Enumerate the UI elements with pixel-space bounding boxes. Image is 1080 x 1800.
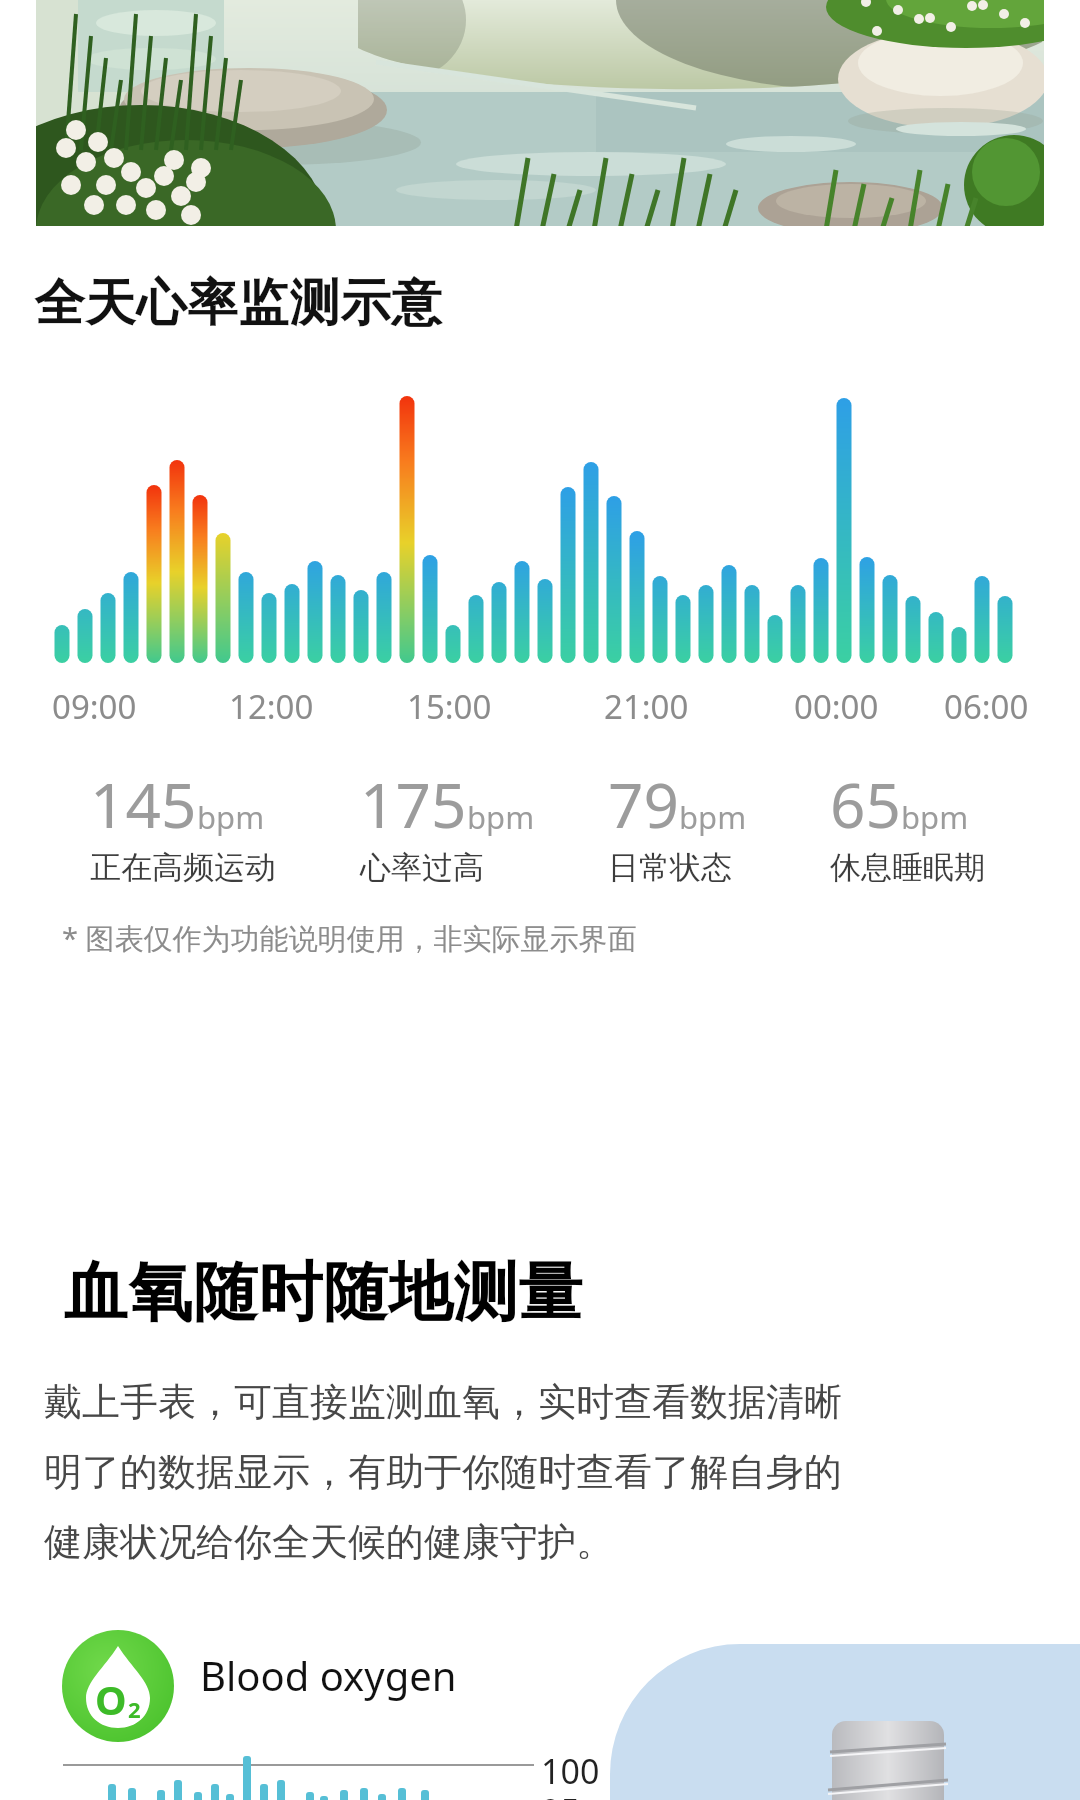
staticText: 12:00 [229, 684, 314, 729]
staticText: bpm [679, 796, 747, 838]
staticText: 79 [608, 762, 679, 846]
staticText: 15:00 [407, 684, 492, 729]
staticText: 血氧随时随地测量 [63, 1252, 583, 1333]
staticText: bpm [901, 796, 969, 838]
button[interactable] [40, 1608, 585, 1800]
staticText: Blood oxygen [200, 1648, 457, 1702]
staticText: bpm [197, 796, 265, 838]
staticText: 145 [90, 762, 197, 846]
staticText: 全天心率监测示意 [34, 272, 442, 335]
staticText: 95 [541, 1788, 580, 1800]
staticText: 日常状态 [608, 848, 732, 887]
staticText: 65 [830, 762, 901, 846]
staticText: 21:00 [604, 684, 689, 729]
staticText: 戴上手表，可直接监测血氧，实时查看数据清晰 [44, 1378, 842, 1426]
staticText: 00:00 [794, 684, 879, 729]
staticText: 175 [360, 762, 467, 846]
button[interactable] [610, 1644, 1080, 1800]
staticText: * 图表仅作为功能说明使用，非实际显示界面 [62, 918, 637, 958]
staticText: 休息睡眠期 [830, 848, 985, 887]
staticText: O [95, 1672, 127, 1726]
staticText: 明了的数据显示，有助于你随时查看了解自身的 [44, 1448, 842, 1496]
staticText: 健康状况给你全天候的健康守护。 [44, 1518, 614, 1566]
staticText: bpm [467, 796, 535, 838]
staticText: 100 [541, 1748, 600, 1794]
staticText: 06:00 [944, 684, 1029, 729]
staticText: 正在高频运动 [90, 848, 276, 887]
staticText: 2 [128, 1694, 141, 1724]
staticText: 心率过高 [360, 848, 484, 887]
staticText: 09:00 [52, 684, 137, 729]
